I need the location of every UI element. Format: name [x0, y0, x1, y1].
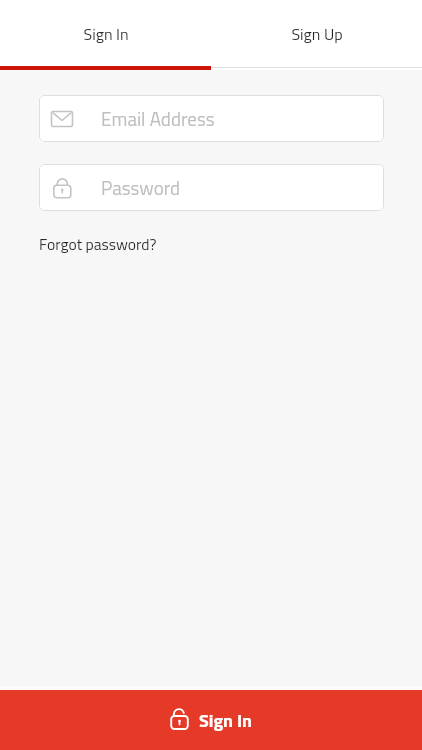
- button[interactable]: Sign In: [0, 0, 211, 67]
- staticText: Forgot password?: [39, 232, 157, 256]
- button[interactable]: Sign Up: [211, 0, 422, 67]
- button[interactable]: Email Address: [39, 95, 384, 142]
- staticText: Password: [101, 173, 181, 202]
- staticText: Sign In: [83, 22, 129, 46]
- button[interactable]: Password: [39, 164, 384, 211]
- staticText: Email Address: [101, 104, 215, 133]
- button[interactable]: Forgot password?: [39, 232, 157, 256]
- staticText: Sign Up: [291, 22, 343, 46]
- other: Sign In: [168, 708, 192, 732]
- button[interactable]: Sign In: [0, 690, 422, 750]
- staticText: Sign In: [199, 707, 253, 734]
